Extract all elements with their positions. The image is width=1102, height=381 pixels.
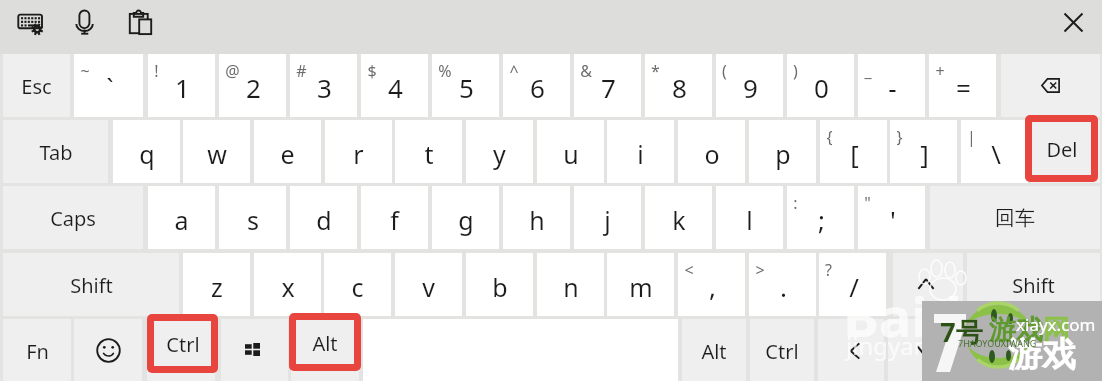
button[interactable]: % (432, 54, 499, 117)
staticText: [ (850, 136, 859, 171)
button[interactable]: ? (819, 253, 886, 316)
button[interactable] (147, 314, 218, 373)
staticText: Ctrl (765, 338, 799, 365)
button[interactable]: $ (361, 54, 428, 117)
button[interactable]: v (395, 253, 462, 316)
staticText: n (563, 270, 579, 304)
staticText: - (888, 70, 897, 105)
staticText: % (438, 60, 452, 82)
button[interactable]: c (324, 253, 391, 316)
button[interactable]: s (219, 186, 286, 249)
staticText: i (637, 137, 644, 171)
button[interactable]: m (607, 253, 674, 316)
button[interactable]: ^ (503, 54, 570, 117)
staticText: d (316, 203, 332, 237)
button[interactable]: + (929, 54, 996, 117)
staticText: & (580, 60, 592, 82)
button[interactable]: Voice input (72, 7, 98, 39)
button[interactable]: q (113, 120, 180, 183)
button[interactable]: i (607, 120, 674, 183)
staticText: ^ (509, 60, 519, 82)
button[interactable]: w (183, 120, 250, 183)
button[interactable]: ) (787, 54, 854, 117)
button[interactable]: _ (858, 54, 925, 117)
button[interactable] (1025, 319, 1100, 381)
staticText: j (604, 203, 611, 237)
button[interactable]: ~ (74, 54, 143, 117)
staticText: 游戏 (989, 313, 1043, 347)
button[interactable]: | (961, 120, 1028, 183)
staticText: a (174, 203, 189, 237)
button[interactable]: > (749, 253, 816, 316)
button[interactable]: Clipboard (126, 8, 156, 38)
button[interactable]: Fn (3, 319, 71, 381)
button[interactable]: Close (1057, 6, 1090, 39)
button[interactable]: j (574, 186, 641, 249)
button[interactable]: Right (955, 319, 1021, 381)
staticText: : (793, 192, 798, 214)
staticText: ( (722, 60, 727, 82)
button[interactable]: r (325, 120, 392, 183)
button[interactable] (289, 313, 361, 371)
staticText: 5 (459, 70, 474, 105)
button[interactable]: h (503, 186, 570, 249)
button[interactable]: Down (888, 319, 951, 381)
staticText: Fn (26, 338, 49, 365)
button[interactable]: e (254, 120, 321, 183)
button[interactable]: Alt (682, 319, 746, 381)
button[interactable]: x (254, 253, 321, 316)
button[interactable]: Keyboard settings (14, 8, 48, 38)
button[interactable]: d (290, 186, 357, 249)
staticText: 7HAOYOUXIWANG (958, 337, 1037, 349)
button[interactable]: Shift (967, 253, 1100, 316)
button[interactable]: t (395, 120, 462, 183)
button[interactable]: ( (716, 54, 783, 117)
button[interactable]: Backspace (1001, 54, 1100, 117)
button[interactable]: " (858, 186, 925, 249)
button[interactable]: & (574, 54, 641, 117)
staticText: c (351, 270, 364, 304)
button[interactable]: Shift (3, 253, 179, 316)
button[interactable]: { (820, 120, 887, 183)
button[interactable]: : (787, 186, 854, 249)
button[interactable]: Tab (3, 120, 108, 183)
staticText: ; (818, 202, 825, 237)
button[interactable]: n (537, 253, 604, 316)
staticText: Caps (50, 205, 96, 232)
button[interactable]: } (890, 120, 957, 183)
button[interactable] (1025, 115, 1098, 182)
button[interactable]: < (678, 253, 745, 316)
staticText: 6 (530, 70, 545, 105)
button[interactable]: y (466, 120, 533, 183)
button[interactable]: Caps (3, 186, 143, 249)
staticText: 4 (388, 70, 403, 105)
button[interactable]: o (678, 120, 745, 183)
button[interactable]: p (749, 120, 816, 183)
button[interactable]: # (290, 54, 357, 117)
button[interactable]: ! (148, 54, 215, 117)
button[interactable]: Ctrl (750, 319, 814, 381)
button[interactable]: Esc (3, 54, 70, 117)
button[interactable]: Up (893, 253, 963, 316)
button[interactable]: @ (219, 54, 286, 117)
button[interactable]: g (432, 186, 499, 249)
staticText: Tab (39, 139, 73, 166)
button[interactable]: Windows (221, 319, 288, 381)
button[interactable]: u (537, 120, 604, 183)
staticText: f (390, 203, 399, 237)
button[interactable]: b (466, 253, 533, 316)
staticText: + (935, 60, 945, 82)
button[interactable]: k (645, 186, 712, 249)
button[interactable]: Left (818, 319, 884, 381)
staticText: g (458, 203, 474, 237)
button[interactable]: z (183, 253, 250, 316)
button[interactable]: 回车 (930, 186, 1100, 249)
button[interactable]: l (716, 186, 783, 249)
button[interactable]: a (148, 186, 215, 249)
button[interactable]: * (645, 54, 712, 117)
button[interactable]: f (361, 186, 428, 249)
staticText: w (207, 137, 227, 171)
button[interactable]: Emoji (74, 319, 142, 381)
staticText: Ctrl (166, 331, 200, 358)
